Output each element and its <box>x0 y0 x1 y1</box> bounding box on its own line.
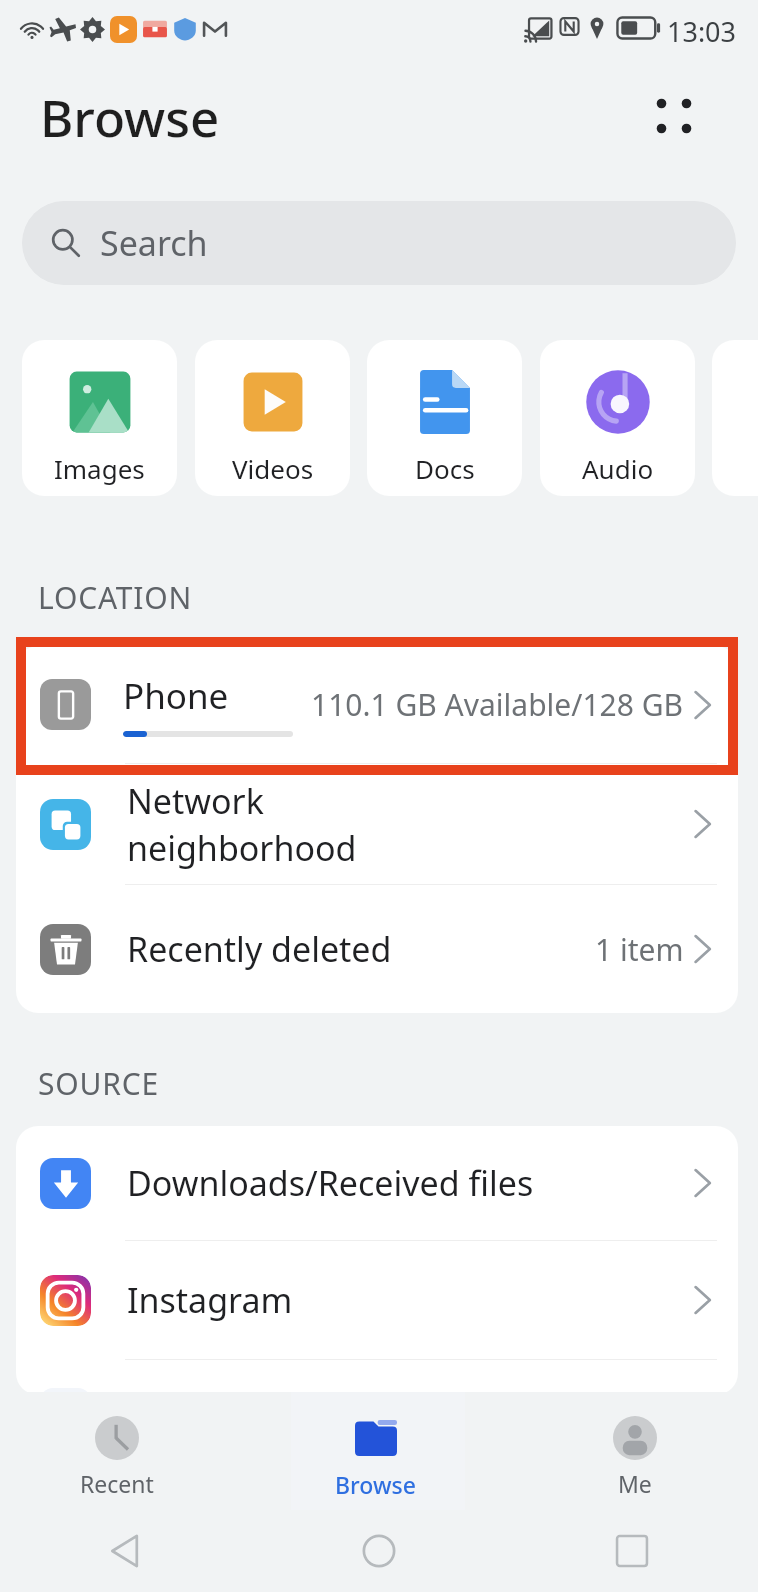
staticText: Images <box>54 451 145 486</box>
button[interactable]: Recents <box>600 1519 664 1583</box>
staticText: SOURCE <box>38 1063 159 1104</box>
button[interactable]: Downloads/Received files <box>16 1126 738 1240</box>
staticText: 110.1 GB Available/128 GB <box>311 684 684 725</box>
staticText: Downloads/Received files <box>127 1160 684 1206</box>
staticText: Instagram <box>127 1277 684 1323</box>
button[interactable]: Videos <box>195 340 350 496</box>
button[interactable]: Me <box>551 1392 719 1510</box>
button[interactable]: Browse <box>291 1392 459 1510</box>
button[interactable]: Instagram <box>16 1241 738 1359</box>
staticText: Recently deleted <box>127 926 595 972</box>
staticText: Recent <box>80 1468 154 1499</box>
button[interactable]: Home <box>347 1519 411 1583</box>
staticText: Search <box>100 220 208 266</box>
staticText: LOCATION <box>38 577 193 618</box>
button[interactable]: Recent <box>33 1392 201 1510</box>
staticText: Videos <box>232 451 314 486</box>
staticText: 13:03 <box>667 13 737 50</box>
button[interactable]: Back <box>94 1519 158 1583</box>
staticText: Browse <box>335 1469 416 1500</box>
button[interactable]: More options <box>638 80 710 152</box>
button[interactable]: Network neighborhood <box>16 764 738 884</box>
button[interactable]: Search <box>22 201 736 285</box>
button[interactable]: Docs <box>367 340 522 496</box>
staticText: 1 item <box>595 929 684 970</box>
staticText: Audio <box>582 451 654 486</box>
staticText: Phone <box>123 672 229 720</box>
button[interactable]: Phone <box>16 646 738 763</box>
staticText: Network neighborhood <box>127 778 684 871</box>
staticText: Browse <box>40 82 220 151</box>
button[interactable]: Recently deleted <box>16 885 738 1013</box>
staticText: Docs <box>415 451 475 486</box>
button[interactable]: Audio <box>540 340 695 496</box>
button[interactable]: Images <box>22 340 177 496</box>
staticText: Me <box>618 1468 652 1499</box>
